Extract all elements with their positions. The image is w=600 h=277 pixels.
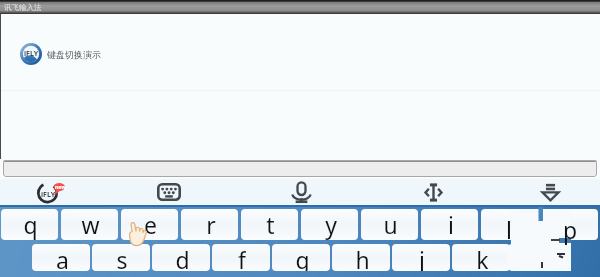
button[interactable]: [3, 160, 597, 177]
staticText: s: [116, 244, 128, 271]
staticText: j: [419, 244, 425, 271]
staticText: q: [23, 209, 38, 240]
staticText: 键盘切换演示: [47, 49, 101, 60]
staticText: p: [563, 214, 578, 245]
button[interactable]: r: [181, 209, 238, 240]
staticText: k: [476, 244, 489, 271]
button[interactable]: u: [361, 209, 418, 240]
staticText: iFLY: [24, 49, 39, 59]
staticText: u: [383, 209, 398, 240]
button[interactable]: d: [152, 244, 210, 271]
button[interactable]: w: [61, 209, 118, 240]
staticText: y: [325, 209, 337, 240]
staticText: l: [506, 214, 512, 245]
button[interactable]: h: [332, 244, 390, 271]
button[interactable]: k: [452, 244, 510, 271]
staticText: r: [206, 209, 216, 240]
button[interactable]: l: [512, 244, 570, 271]
staticText: e: [144, 209, 157, 240]
button[interactable]: q: [1, 209, 58, 240]
staticText: i: [448, 209, 454, 240]
staticText: h: [355, 244, 370, 271]
staticText: g: [295, 244, 310, 271]
button[interactable]: g: [272, 244, 330, 271]
staticText: l: [539, 244, 545, 271]
button[interactable]: iFLY menu: [0, 179, 110, 205]
staticText: w: [81, 209, 100, 240]
button[interactable]: i: [421, 209, 478, 240]
button[interactable]: j: [392, 244, 450, 271]
staticText: t: [266, 209, 275, 240]
button[interactable]: f: [212, 244, 270, 271]
staticText: 讯飞输入法: [4, 3, 42, 12]
button[interactable]: a: [32, 244, 90, 271]
button[interactable]: [481, 209, 538, 240]
button[interactable]: [541, 209, 598, 240]
button[interactable]: Cursor control: [372, 179, 495, 205]
button[interactable]: t: [241, 209, 298, 240]
staticText: f: [238, 244, 246, 271]
staticText: a: [56, 244, 69, 271]
staticText: iFLY: [41, 190, 56, 200]
button[interactable]: s: [92, 244, 150, 271]
staticText: new: [55, 184, 66, 191]
button[interactable]: Keyboard layout: [110, 179, 228, 205]
button[interactable]: Hide keyboard: [495, 179, 600, 205]
button[interactable]: Voice input: [240, 179, 362, 205]
staticText: d: [175, 244, 190, 271]
button[interactable]: y: [301, 209, 358, 240]
button[interactable]: e: [121, 209, 178, 240]
